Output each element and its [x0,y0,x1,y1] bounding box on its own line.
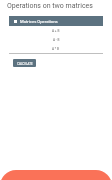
staticText: CALCULATE [17,62,33,65]
button[interactable]: Selected [9,16,103,26]
staticText: A - B [53,38,60,42]
button[interactable]: A * B [9,44,103,53]
staticText: A * B [52,47,60,51]
staticText: Operations on two matrices [7,2,93,10]
staticText: A + B [52,29,60,33]
staticText: Matrices Operations [20,19,58,24]
button[interactable]: CALCULATE [13,59,36,67]
button[interactable]: A + B [9,26,103,35]
button[interactable]: A - B [9,35,103,44]
